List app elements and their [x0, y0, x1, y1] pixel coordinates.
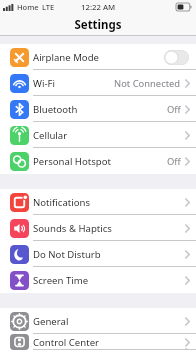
staticText: Home [17, 2, 39, 12]
staticText: LTE [42, 2, 55, 12]
staticText: Sounds & Haptics [33, 222, 112, 235]
staticText: 12:22 AM [81, 2, 116, 13]
button[interactable]: Do Not Disturb [0, 241, 196, 267]
staticText: Bluetooth [33, 103, 78, 116]
button[interactable]: Wi-Fi [0, 70, 196, 96]
staticText: Cellular [33, 129, 68, 142]
staticText: Notifications [33, 196, 91, 209]
button[interactable]: Airplane Mode toggle [164, 50, 189, 65]
staticText: Do Not Disturb [33, 248, 101, 261]
staticText: Control Center [33, 336, 100, 349]
button[interactable]: Bluetooth [0, 96, 196, 122]
staticText: Off [167, 155, 181, 168]
staticText: Wi-Fi [33, 77, 55, 90]
staticText: Airplane Mode [33, 51, 99, 64]
button[interactable]: Sounds & Haptics [0, 215, 196, 241]
button[interactable]: Cellular [0, 122, 196, 148]
staticText: Screen Time [33, 274, 89, 287]
button[interactable]: General [0, 308, 196, 334]
staticText: Personal Hotspot [33, 155, 111, 168]
button[interactable]: Control Center [0, 334, 196, 350]
staticText: Off [167, 103, 181, 116]
staticText: Not Connected [114, 77, 181, 90]
button[interactable]: Notifications [0, 189, 196, 215]
button[interactable]: Screen Time [0, 267, 196, 293]
staticText: General [33, 315, 69, 328]
staticText: Settings [74, 17, 122, 33]
button[interactable]: Airplane Mode [0, 44, 196, 70]
button[interactable]: Personal Hotspot [0, 148, 196, 174]
